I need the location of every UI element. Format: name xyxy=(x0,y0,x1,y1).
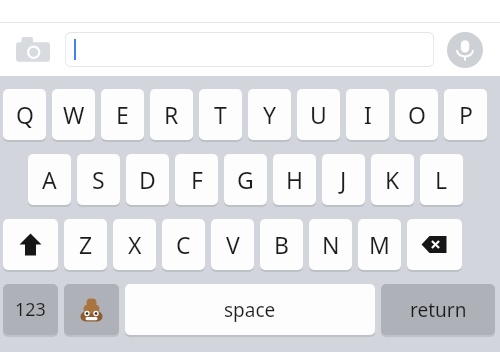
staticText: V xyxy=(226,229,240,260)
button[interactable]: Y xyxy=(248,89,291,142)
button[interactable]: space xyxy=(125,284,375,337)
button[interactable]: R xyxy=(150,89,193,142)
staticText: M xyxy=(369,229,390,260)
staticText: C xyxy=(176,229,191,260)
button[interactable]: M xyxy=(358,219,401,272)
button[interactable]: N xyxy=(309,219,352,272)
button[interactable]: return xyxy=(381,284,495,337)
staticText: K xyxy=(385,164,400,195)
button[interactable] xyxy=(65,32,434,67)
staticText: 123 xyxy=(15,297,46,322)
staticText: Q xyxy=(16,99,34,130)
button[interactable]: W xyxy=(52,89,95,142)
button[interactable]: Z xyxy=(64,219,107,272)
button[interactable]: U xyxy=(297,89,340,142)
button[interactable]: Emoji keyboard xyxy=(64,284,119,337)
button[interactable]: E xyxy=(101,89,144,142)
button[interactable]: I xyxy=(346,89,389,142)
button[interactable]: Q xyxy=(3,89,46,142)
button[interactable]: L xyxy=(420,154,463,207)
button[interactable]: Shift xyxy=(3,219,58,272)
staticText: B xyxy=(274,229,289,260)
button[interactable]: A xyxy=(28,154,71,207)
button[interactable]: B xyxy=(260,219,303,272)
staticText: D xyxy=(139,164,156,195)
staticText: W xyxy=(63,99,85,130)
staticText: T xyxy=(214,99,227,130)
button[interactable]: K xyxy=(371,154,414,207)
button[interactable]: F xyxy=(175,154,218,207)
staticText: G xyxy=(237,164,254,195)
button[interactable]: T xyxy=(199,89,242,142)
staticText: X xyxy=(128,229,142,260)
staticText: Y xyxy=(263,99,277,130)
button[interactable]: G xyxy=(224,154,267,207)
staticText: F xyxy=(191,164,203,195)
button[interactable]: P xyxy=(444,89,487,142)
staticText: H xyxy=(286,164,304,195)
staticText: space xyxy=(224,297,276,323)
staticText: R xyxy=(164,99,179,130)
staticText: U xyxy=(310,99,327,130)
staticText: return xyxy=(410,297,467,323)
button[interactable]: D xyxy=(126,154,169,207)
button[interactable]: H xyxy=(273,154,316,207)
button[interactable]: J xyxy=(322,154,365,207)
button[interactable]: 123 xyxy=(3,284,58,337)
button[interactable]: X xyxy=(113,219,156,272)
staticText: N xyxy=(322,229,340,260)
button[interactable]: Backspace xyxy=(407,219,462,272)
button[interactable]: O xyxy=(395,89,438,142)
button[interactable]: V xyxy=(211,219,254,272)
button[interactable]: S xyxy=(77,154,120,207)
staticText: I xyxy=(364,99,372,130)
staticText: L xyxy=(435,164,448,195)
staticText: O xyxy=(408,99,426,130)
staticText: P xyxy=(459,99,473,130)
staticText: Z xyxy=(79,229,93,260)
button[interactable]: C xyxy=(162,219,205,272)
staticText: E xyxy=(116,99,129,130)
staticText: J xyxy=(340,164,347,195)
button[interactable]: Voice input xyxy=(447,32,483,68)
staticText: S xyxy=(92,164,105,195)
button[interactable]: Camera xyxy=(16,36,50,64)
staticText: A xyxy=(42,164,57,195)
